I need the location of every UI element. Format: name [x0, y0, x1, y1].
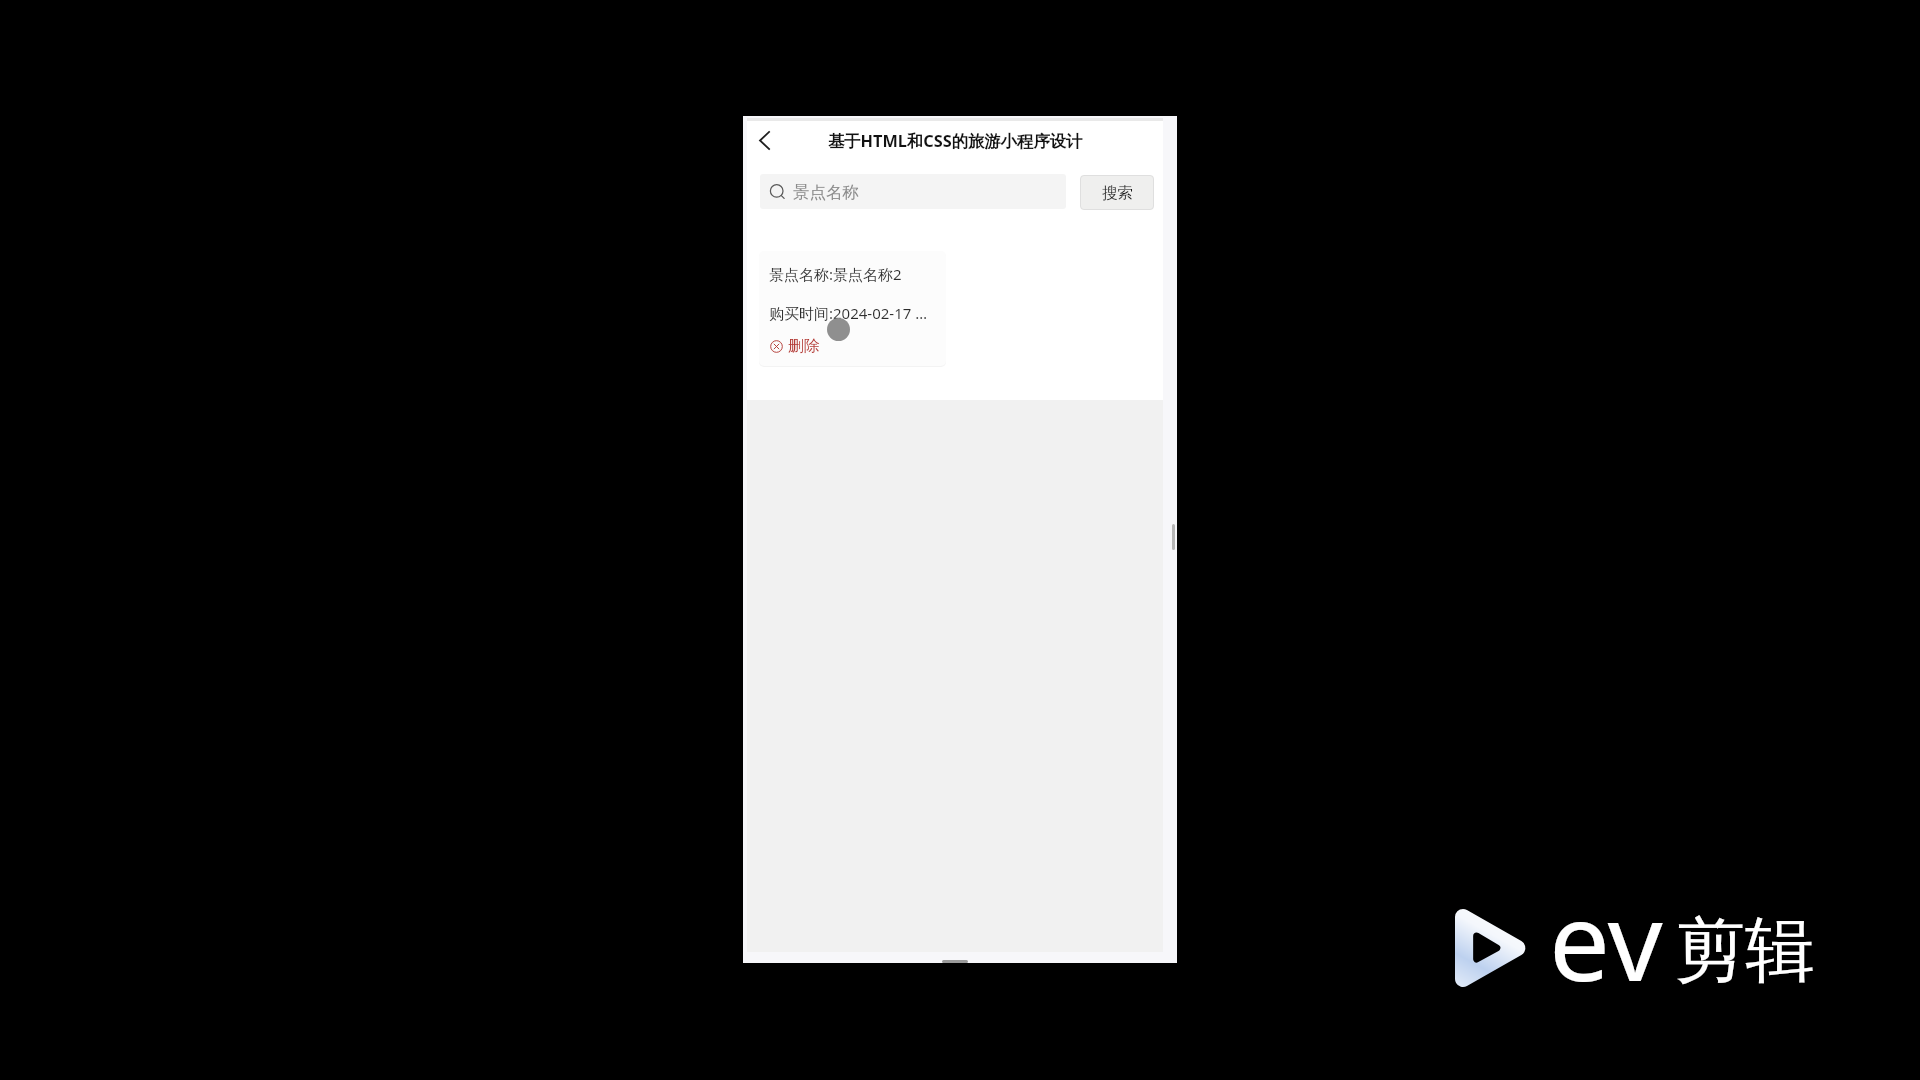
button[interactable]: 搜索: [1080, 175, 1154, 210]
button[interactable]: 景点名称: [760, 174, 1066, 209]
staticText: 基于HTML和CSS的旅游小程序设计: [820, 130, 1090, 152]
staticText: 搜索: [1102, 183, 1133, 202]
button[interactable]: Back: [746, 122, 782, 158]
staticText: 景点名称: [793, 182, 859, 203]
staticText: 删除: [788, 336, 820, 356]
staticText: 剪辑: [1675, 907, 1815, 995]
staticText: 购买时间:2024-02-17 …: [769, 303, 928, 323]
button[interactable]: 景点名称:景点名称2: [759, 251, 946, 366]
button[interactable]: 删除: [770, 336, 820, 356]
staticText: ev: [1549, 866, 1663, 1013]
staticText: 景点名称:景点名称2: [769, 264, 902, 284]
